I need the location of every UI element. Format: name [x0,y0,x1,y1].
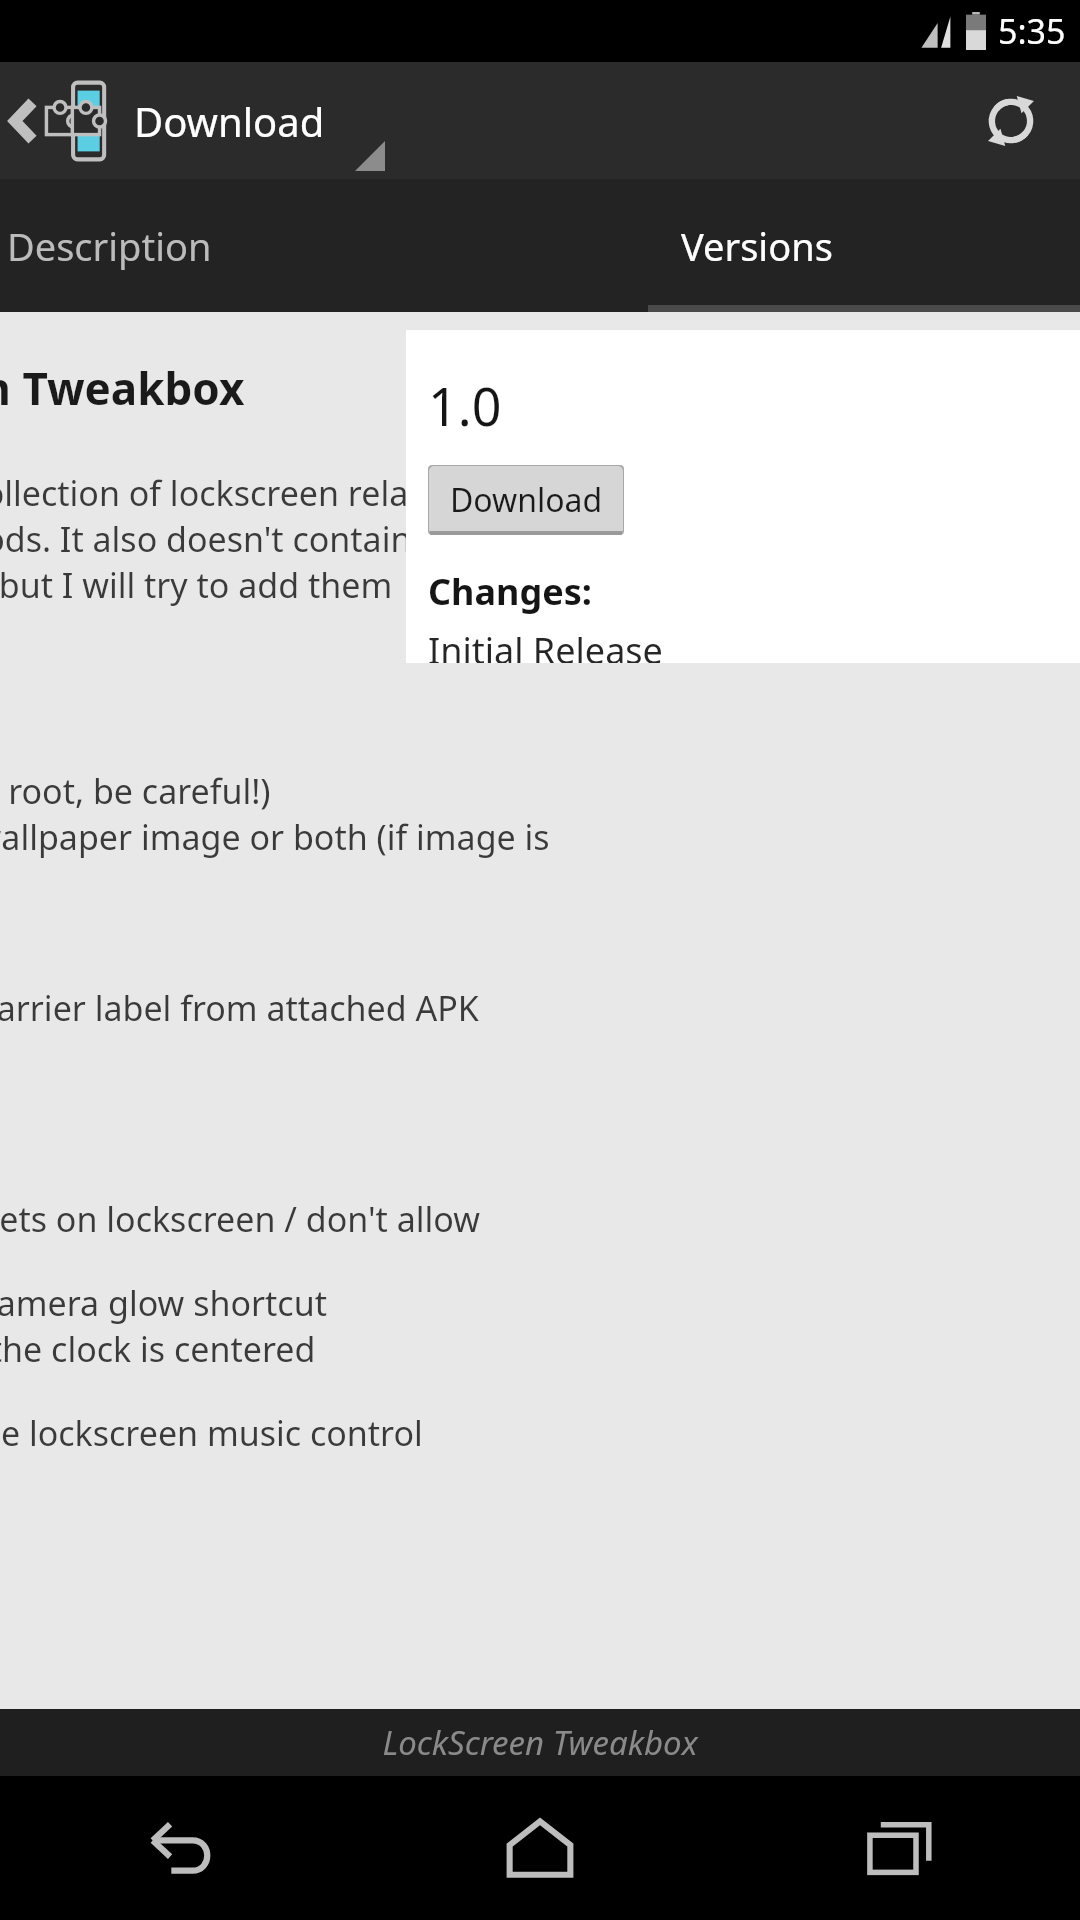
staticText: LockScreen Tweakbox [0,358,245,418]
staticText: Description [7,220,212,272]
staticText: 5:35 [998,8,1066,54]
staticText: - Change how the clock is centered [0,1326,316,1372]
staticText: Download [134,94,325,148]
button[interactable]: Back [0,1776,360,1920]
staticText: Features (need root, be careful!) [0,768,271,814]
staticText: - Remove the carrier label from attached… [0,985,479,1031]
button[interactable]: Home [360,1776,720,1920]
staticText: Versions [681,220,833,272]
button[interactable]: Download [0,62,333,179]
staticText: Changes: [428,567,592,616]
staticText: Download [450,478,603,522]
button[interactable]: Refresh [972,82,1050,160]
staticText: tweaks and mods. It also doesn't contain [0,516,412,562]
button[interactable]: Description [0,179,433,312]
staticText: Initial Release [428,626,663,663]
staticText: LockScreen Tweakbox [382,1720,698,1765]
button[interactable]: Recent apps [720,1776,1080,1920]
staticText: - Remove the camera glow shortcut [0,1280,327,1326]
staticText: This app is a collection of lockscreen r… [0,470,461,516]
staticText: - Enable/Disable lockscreen music contro… [0,1410,423,1456]
staticText: 1.0 [428,370,502,441]
button[interactable]: Download [428,465,624,535]
button[interactable]: Versions [433,179,1080,312]
staticText: - Allow all widgets on lockscreen / don'… [0,1196,480,1242]
staticText: - Change the wallpaper image or both (if… [0,814,550,860]
staticText: everything yet but I will try to add the… [0,562,393,608]
